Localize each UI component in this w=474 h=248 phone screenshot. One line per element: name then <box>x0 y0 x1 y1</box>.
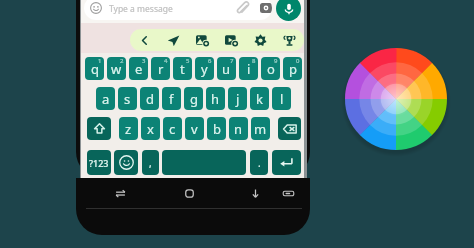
staticText: r <box>158 60 164 78</box>
staticText: 3 <box>142 57 146 65</box>
button[interactable]: Hide keyboard <box>245 183 265 203</box>
staticText: p <box>289 60 297 78</box>
staticText: y <box>201 60 208 78</box>
button[interactable]: d <box>140 87 159 110</box>
staticText: w <box>111 60 122 78</box>
button[interactable]: Space <box>162 150 246 175</box>
staticText: 4 <box>164 57 168 65</box>
button[interactable]: Shift <box>87 117 111 140</box>
button[interactable]: Enter <box>272 150 301 175</box>
button[interactable]: i <box>239 57 258 80</box>
staticText: Type a message <box>109 3 173 15</box>
button[interactable]: w <box>107 57 126 80</box>
button[interactable]: t <box>173 57 192 80</box>
button[interactable]: y <box>195 57 214 80</box>
button[interactable]: l <box>272 87 291 110</box>
staticText: l <box>280 90 284 108</box>
button[interactable]: m <box>251 117 270 140</box>
button[interactable]: Voice message <box>276 0 301 21</box>
button[interactable]: e <box>129 57 148 80</box>
staticText: e <box>135 60 143 78</box>
staticText: v <box>191 120 198 138</box>
button[interactable]: Switch input method <box>110 183 130 203</box>
button[interactable]: Backspace <box>278 117 301 140</box>
button[interactable]: g <box>184 87 203 110</box>
staticText: 9 <box>274 57 278 65</box>
button[interactable]: o <box>261 57 280 80</box>
staticText: m <box>254 120 267 138</box>
staticText: o <box>267 60 275 78</box>
staticText: q <box>91 60 99 78</box>
button[interactable]: f <box>162 87 181 110</box>
button[interactable]: Emoji <box>114 150 138 175</box>
button[interactable]: j <box>228 87 247 110</box>
button[interactable]: q <box>85 57 104 80</box>
staticText: 0 <box>296 57 300 65</box>
staticText: . <box>258 156 261 170</box>
staticText: h <box>211 90 220 108</box>
button[interactable]: n <box>229 117 248 140</box>
staticText: j <box>236 90 240 108</box>
staticText: b <box>213 120 221 138</box>
staticText: 8 <box>252 57 256 65</box>
button[interactable]: Comma <box>142 150 159 175</box>
button[interactable]: b <box>207 117 226 140</box>
staticText: 1 <box>98 57 102 65</box>
button[interactable]: Camera <box>260 2 272 14</box>
button[interactable]: r <box>151 57 170 80</box>
staticText: 2 <box>120 57 124 65</box>
staticText: u <box>222 60 231 78</box>
staticText: g <box>190 90 198 108</box>
button[interactable]: Period <box>250 150 268 175</box>
staticText: 6 <box>208 57 212 65</box>
button[interactable]: Type a message <box>84 0 272 20</box>
button[interactable]: u <box>217 57 236 80</box>
staticText: a <box>102 90 110 108</box>
staticText: c <box>169 120 176 138</box>
staticText: n <box>234 120 243 138</box>
button[interactable]: v <box>185 117 204 140</box>
staticText: t <box>180 60 185 78</box>
button[interactable]: a <box>96 87 115 110</box>
button[interactable]: x <box>141 117 160 140</box>
staticText: x <box>147 120 154 138</box>
staticText: 7 <box>230 57 234 65</box>
button[interactable]: GIF <box>217 29 246 51</box>
staticText: z <box>125 120 132 138</box>
button[interactable]: Settings <box>246 29 275 51</box>
staticText: s <box>124 90 131 108</box>
staticText: i <box>247 60 251 78</box>
staticText: , <box>149 156 152 170</box>
button[interactable]: p <box>283 57 302 80</box>
button[interactable]: k <box>250 87 269 110</box>
button[interactable]: Home <box>179 183 199 203</box>
button[interactable]: Rewards <box>275 29 304 51</box>
staticText: 5 <box>186 57 190 65</box>
staticText: d <box>146 90 154 108</box>
button[interactable]: s <box>118 87 137 110</box>
button[interactable]: Symbols <box>87 150 111 175</box>
staticText: f <box>169 90 174 108</box>
button[interactable]: Back <box>130 29 159 51</box>
button[interactable]: Colour theme <box>344 47 448 151</box>
staticText: k <box>256 90 263 108</box>
button[interactable]: h <box>206 87 225 110</box>
button[interactable]: Send <box>159 29 188 51</box>
button[interactable]: Stickers <box>188 29 217 51</box>
button[interactable]: Attach <box>236 1 250 15</box>
button[interactable]: z <box>119 117 138 140</box>
staticText: ?123 <box>89 157 109 169</box>
button[interactable]: c <box>163 117 182 140</box>
button[interactable]: Keyboard <box>278 183 298 203</box>
